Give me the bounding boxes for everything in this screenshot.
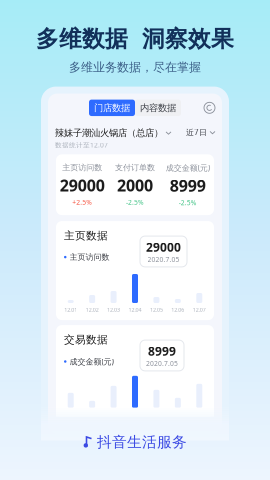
button[interactable]: 内容数据	[135, 100, 181, 116]
staticText: 近7日	[186, 127, 207, 138]
staticText: 数据统计至12.07	[55, 140, 108, 149]
staticText: 多维数据 洞察效果	[36, 25, 234, 53]
button[interactable]: Refresh	[204, 102, 215, 113]
staticText: 主页数据	[64, 229, 108, 242]
staticText: 12.05	[150, 306, 163, 313]
staticText: 内容数据	[140, 102, 176, 114]
staticText: 12.02	[86, 306, 99, 313]
staticText: 门店数据	[94, 102, 130, 114]
staticText: -2.5%	[126, 198, 144, 207]
staticText: 8999	[170, 175, 206, 196]
staticText: +2.5%	[72, 198, 92, 207]
staticText: 交易数据	[64, 333, 108, 346]
staticText: 多维业务数据，尽在掌握	[69, 60, 201, 74]
staticText: 主页访问数	[69, 252, 109, 262]
staticText: 12.01	[64, 306, 77, 313]
staticText: 2000	[117, 175, 153, 196]
staticText: 29000	[146, 239, 181, 255]
staticText: 2020.7.05	[147, 255, 179, 264]
staticText: 12.07	[193, 306, 206, 313]
staticText: 12.04	[128, 306, 141, 313]
staticText: 29000	[60, 175, 105, 196]
button[interactable]: 近7日	[186, 127, 215, 138]
staticText: 主页访问数	[62, 163, 102, 173]
button[interactable]: 辣妹子潮汕火锅店（总店）	[55, 127, 171, 149]
staticText: 辣妹子潮汕火锅店（总店）	[55, 127, 163, 138]
staticText: 成交金额(元)	[69, 356, 113, 367]
staticText: 8999	[148, 343, 176, 359]
staticText: 抖音生活服务	[97, 433, 187, 451]
staticText: 2020.7.05	[146, 359, 178, 368]
staticText: 支付订单数	[115, 163, 155, 173]
staticText: 成交金额(元)	[166, 162, 210, 173]
button[interactable]: 门店数据	[89, 100, 135, 116]
staticText: 12.03	[107, 306, 120, 313]
staticText: -2.5%	[179, 198, 197, 207]
staticText: 12.06	[171, 306, 184, 313]
